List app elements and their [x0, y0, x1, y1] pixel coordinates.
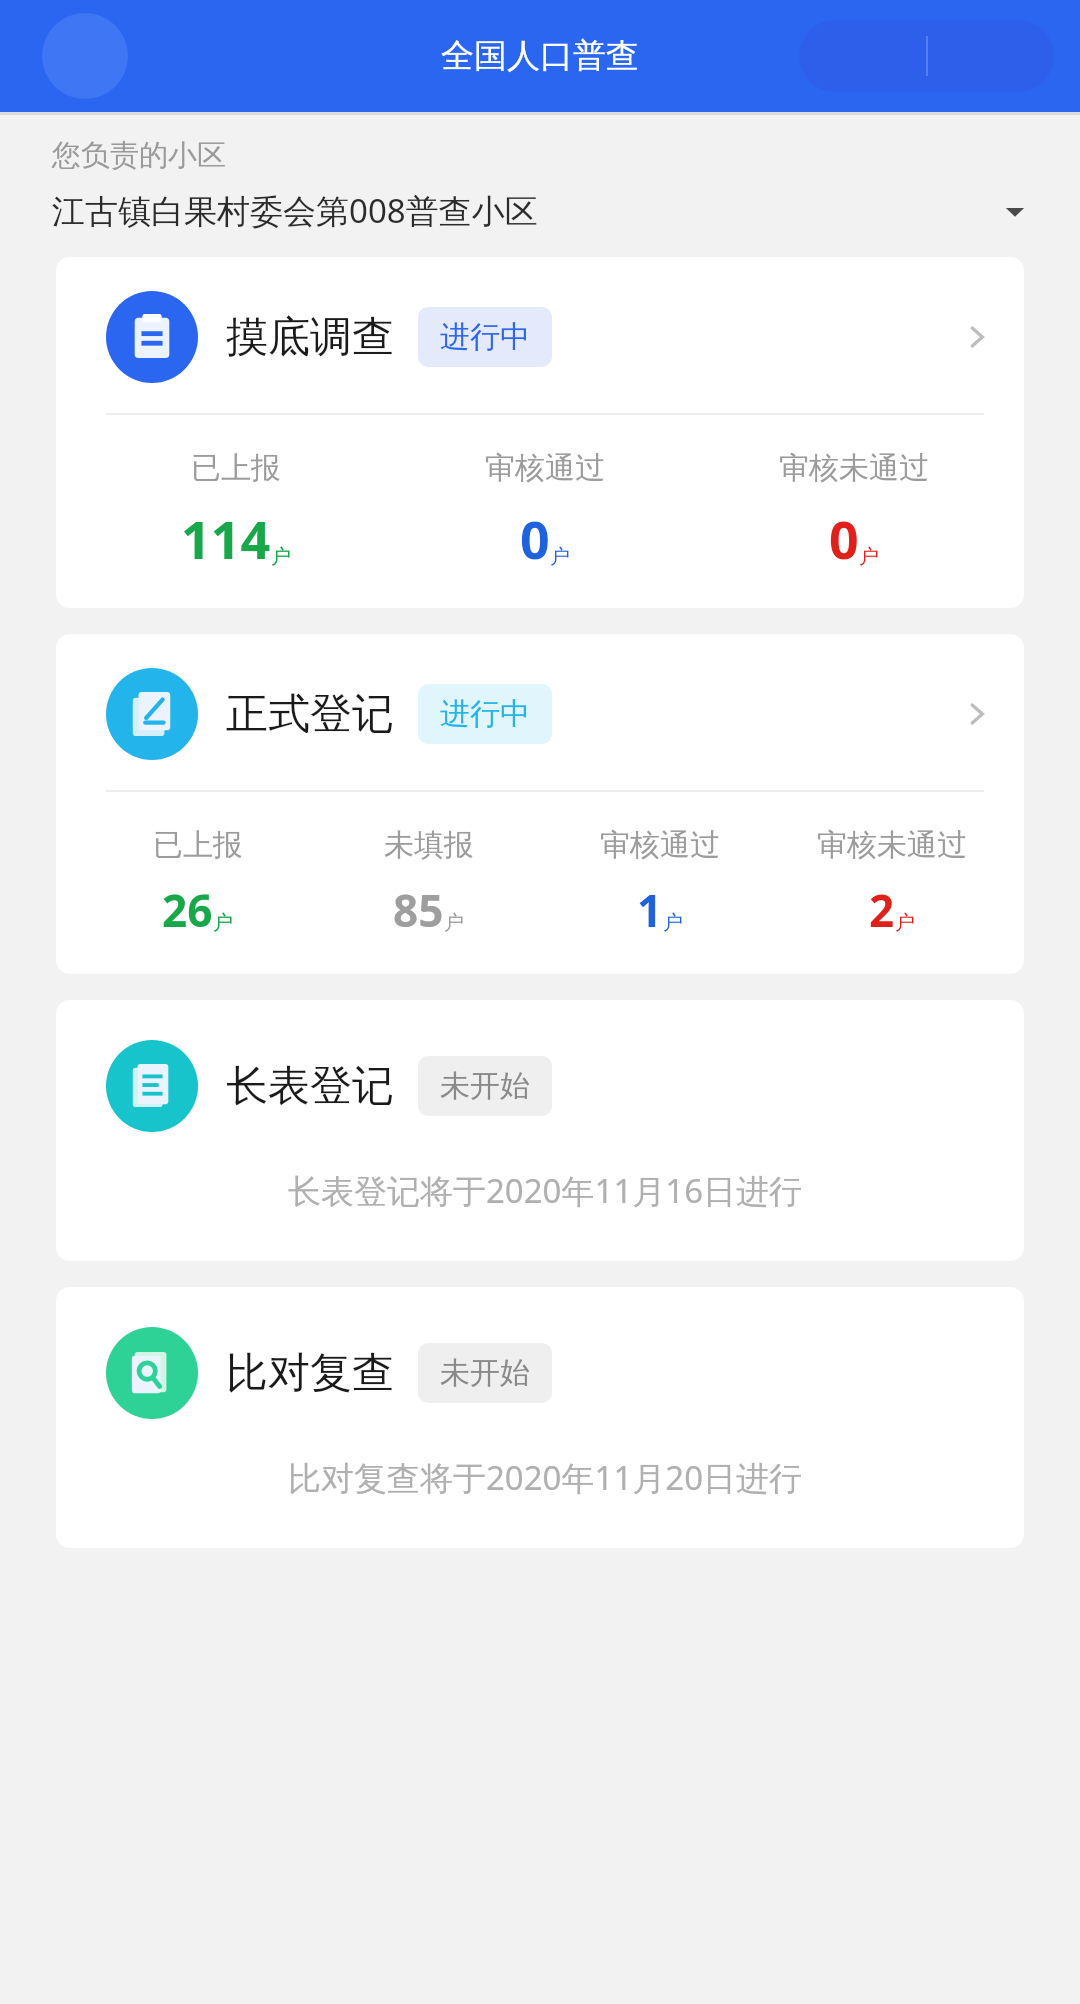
staticText: 户 — [895, 910, 915, 935]
button[interactable]: 摸底调查 — [56, 257, 1024, 608]
staticText: 户 — [663, 910, 683, 935]
staticText: 已上报 — [153, 826, 243, 864]
staticText: 0 — [829, 503, 859, 574]
staticText: 审核未通过 — [779, 449, 929, 487]
staticText: 比对复查 — [226, 1347, 394, 1400]
staticText: 2 — [869, 880, 895, 940]
staticText: 审核通过 — [600, 826, 720, 864]
staticText: 进行中 — [440, 318, 530, 356]
staticText: 长表登记将于2020年11月16日进行 — [106, 1168, 984, 1213]
staticText: 审核通过 — [485, 449, 605, 487]
staticText: 户 — [213, 910, 233, 935]
staticText: 未开始 — [440, 1067, 530, 1105]
staticText: 85 — [393, 880, 444, 940]
button[interactable]: 正式登记 — [56, 634, 1024, 974]
button[interactable]: 江古镇白果村委会第008普查小区 — [52, 188, 1028, 233]
other: Open — [962, 699, 992, 729]
staticText: 审核未通过 — [817, 826, 967, 864]
button[interactable]: Profile — [42, 13, 128, 99]
staticText: 户 — [271, 544, 291, 569]
staticText: 114 — [181, 503, 271, 574]
staticText: 户 — [859, 544, 879, 569]
staticText: 0 — [520, 503, 550, 574]
staticText: 长表登记 — [226, 1060, 394, 1113]
staticText: 您负责的小区 — [52, 137, 226, 174]
staticText: 全国人口普查 — [441, 35, 639, 77]
staticText: 进行中 — [440, 695, 530, 733]
staticText: 未填报 — [384, 826, 474, 864]
staticText: 摸底调查 — [226, 311, 394, 364]
staticText: 江古镇白果村委会第008普查小区 — [52, 188, 1002, 233]
staticText: 未开始 — [440, 1354, 530, 1392]
button[interactable]: 长表登记 — [56, 1000, 1024, 1261]
staticText: 26 — [162, 880, 213, 940]
staticText: 比对复查将于2020年11月20日进行 — [106, 1455, 984, 1500]
staticText: 正式登记 — [226, 688, 394, 741]
staticText: 1 — [637, 880, 663, 940]
staticText: 已上报 — [191, 449, 281, 487]
staticText: 户 — [444, 910, 464, 935]
other: Open — [962, 322, 992, 352]
button[interactable]: 比对复查 — [56, 1287, 1024, 1548]
staticText: 户 — [550, 544, 570, 569]
